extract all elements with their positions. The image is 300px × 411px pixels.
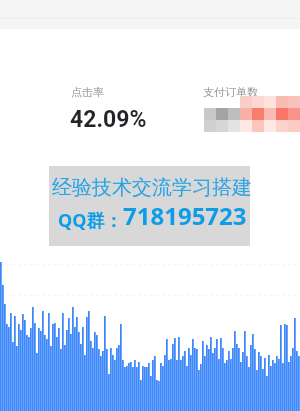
staticText: 支付订单数: [203, 85, 258, 99]
staticText: 经验技术交流学习搭建: [52, 175, 252, 200]
staticText: 42.09%: [70, 106, 147, 133]
staticText: QQ群：: [58, 208, 123, 233]
staticText: 718195723: [123, 199, 247, 232]
staticText: 点击率: [71, 85, 104, 99]
